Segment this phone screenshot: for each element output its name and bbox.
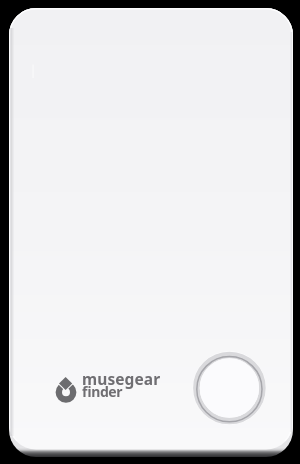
staticText: finder: [82, 382, 123, 401]
button[interactable]: [193, 351, 267, 425]
staticText: musegear: [82, 368, 161, 389]
